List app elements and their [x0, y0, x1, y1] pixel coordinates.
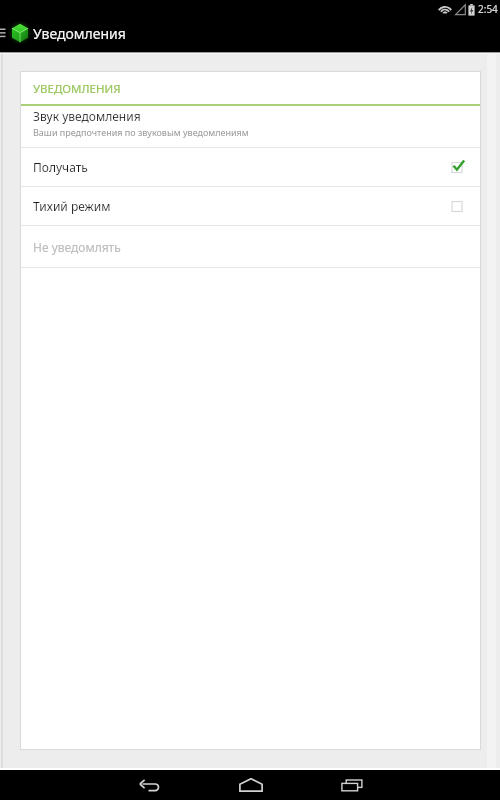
staticText: УВЕДОМЛЕНИЯ	[33, 81, 121, 97]
button[interactable]	[336, 770, 368, 800]
staticText: Тихий режим	[33, 198, 450, 214]
staticText: Звук уведомления	[33, 108, 141, 124]
button[interactable]: Звук уведомления	[21, 106, 480, 147]
staticText: Получать	[33, 159, 450, 175]
staticText: Уведомления	[33, 24, 126, 43]
staticText: 2:54	[478, 2, 498, 16]
button[interactable]: Получать	[21, 148, 480, 186]
button[interactable]: Тихий режим	[21, 187, 480, 225]
button[interactable]	[134, 770, 166, 800]
staticText: Не уведомлять	[33, 239, 121, 255]
button[interactable]: Не уведомлять	[21, 226, 480, 267]
button[interactable]: Уведомления	[10, 21, 126, 45]
staticText: Ваши предпочтения по звуковым уведомлени…	[33, 126, 249, 138]
button[interactable]	[235, 770, 267, 800]
